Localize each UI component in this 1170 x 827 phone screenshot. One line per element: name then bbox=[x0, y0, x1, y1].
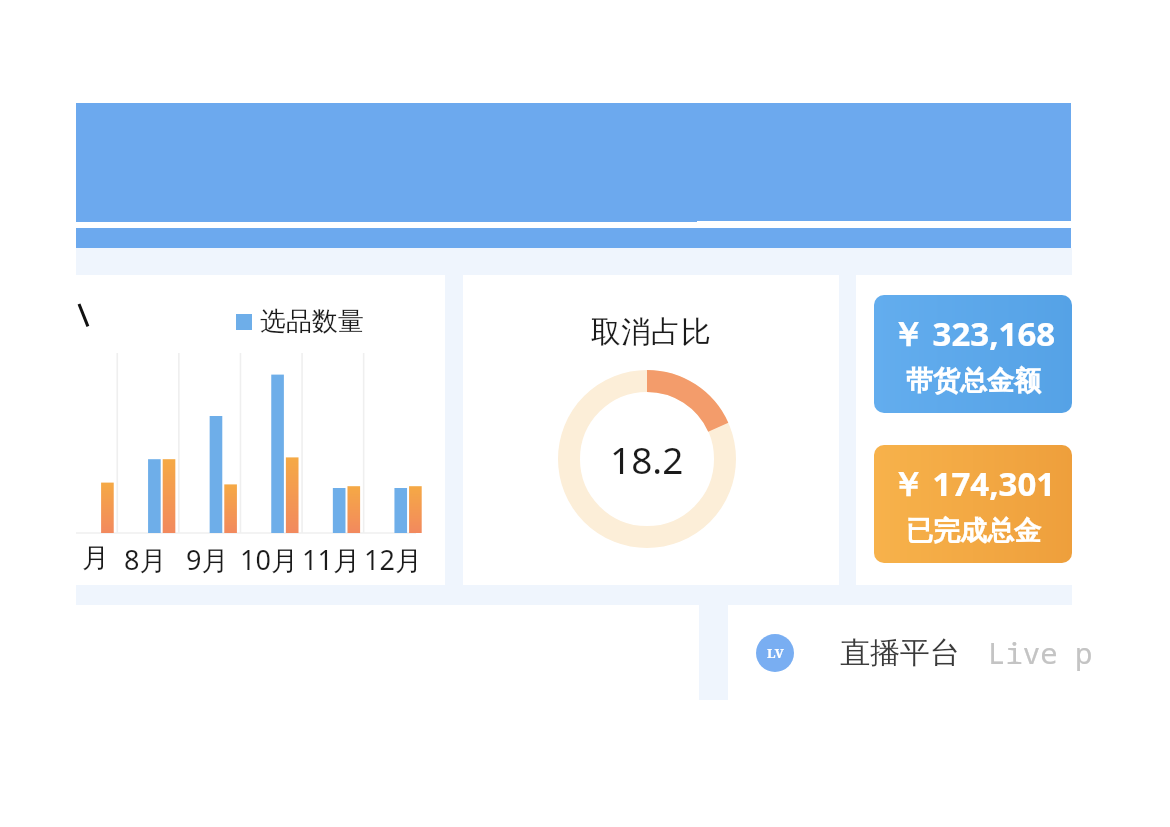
button[interactable]: 取消占比 bbox=[463, 275, 839, 585]
staticText: 12月 bbox=[364, 541, 422, 578]
staticText: 取消占比 bbox=[463, 313, 839, 351]
staticText: ￥ 323,168 bbox=[891, 311, 1056, 356]
button[interactable]: ￥ 174,301 bbox=[874, 445, 1072, 563]
button[interactable]: ￥ 323,168 bbox=[874, 295, 1072, 413]
button[interactable]: 选品数量 bbox=[76, 275, 445, 585]
button[interactable]: ￥ 323,168 bbox=[856, 275, 1072, 585]
staticText: 10月 bbox=[240, 541, 298, 578]
staticText: 11月 bbox=[302, 541, 360, 578]
staticText: 带货总金额 bbox=[906, 364, 1041, 398]
staticText: 9月 bbox=[186, 541, 229, 578]
staticText: ￥ 174,301 bbox=[891, 461, 1056, 506]
staticText: 18.2 bbox=[610, 434, 684, 484]
staticText: 8月 bbox=[124, 541, 167, 578]
staticText: 月 bbox=[82, 541, 109, 575]
button[interactable] bbox=[76, 103, 1071, 222]
staticText: Live p bbox=[988, 633, 1093, 672]
staticText: 直播平台 bbox=[840, 634, 960, 672]
staticText: 选品数量 bbox=[260, 305, 364, 338]
staticText: 已完成总金 bbox=[906, 514, 1041, 548]
button[interactable]: LV bbox=[728, 605, 1170, 700]
staticText: LV bbox=[767, 644, 784, 662]
